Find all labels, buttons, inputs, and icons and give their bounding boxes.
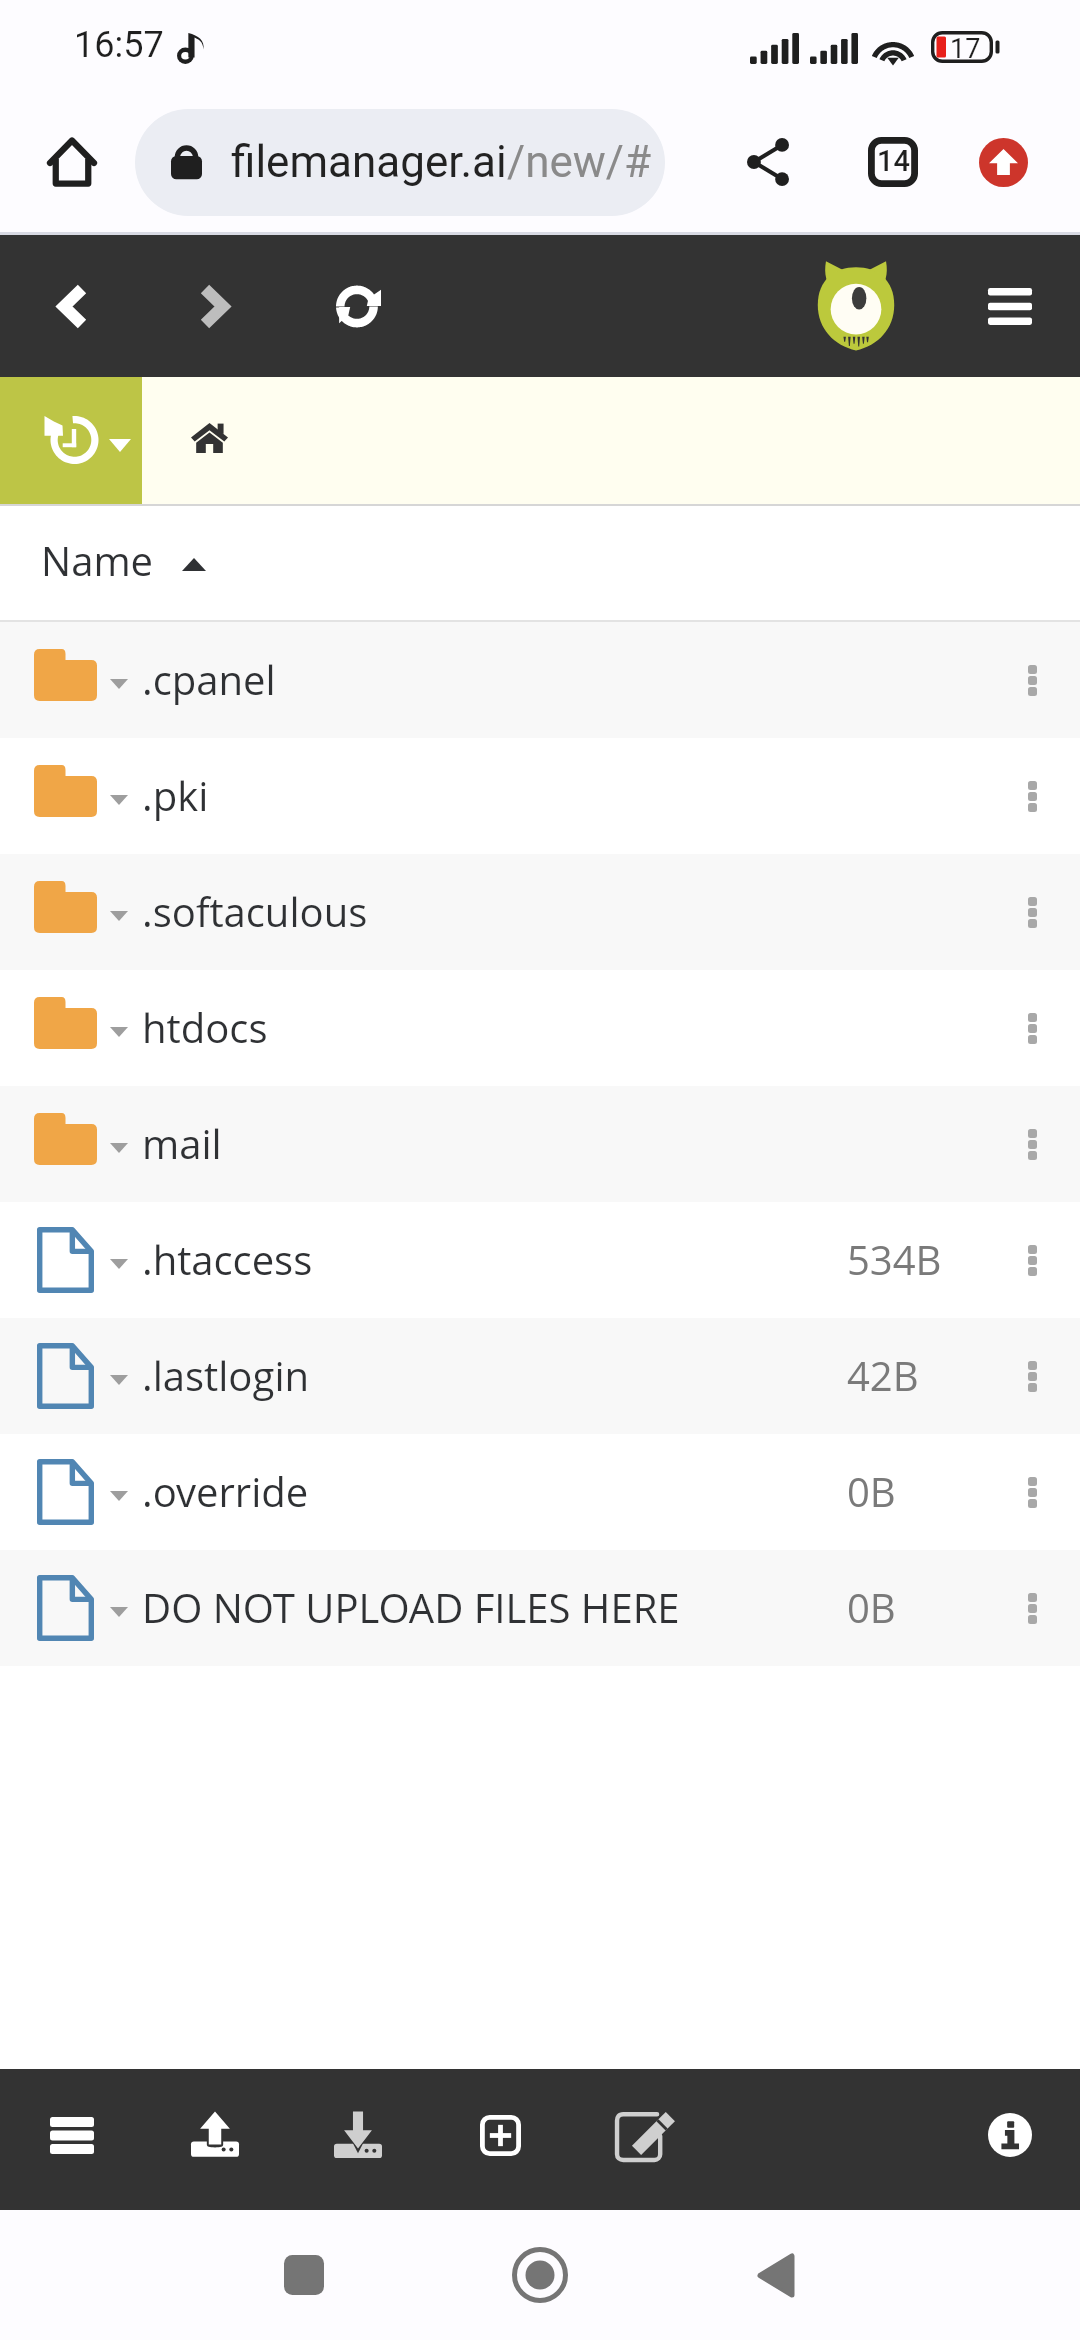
button[interactable]: More options <box>987 751 1077 841</box>
button[interactable]: Home <box>495 2230 585 2320</box>
staticText: 0B <box>847 1464 896 1518</box>
button[interactable]: Share <box>722 116 814 208</box>
button[interactable]: Upload <box>170 2090 260 2180</box>
button[interactable]: New <box>455 2090 545 2180</box>
staticText: htdocs <box>142 1000 268 1054</box>
button[interactable]: More options <box>987 1331 1077 1421</box>
button[interactable]: DO NOT UPLOAD FILES HERE <box>0 1550 1080 1666</box>
button[interactable]: Home <box>30 120 114 204</box>
button[interactable]: More options <box>987 983 1077 1073</box>
button[interactable]: Menu <box>962 258 1058 354</box>
staticText: /new/# <box>507 136 652 188</box>
button[interactable]: Back <box>24 257 122 355</box>
button[interactable]: Back <box>730 2230 820 2320</box>
button[interactable]: mail <box>0 1086 1080 1202</box>
button[interactable]: .pki <box>0 738 1080 854</box>
button[interactable]: Upload <box>955 114 1051 210</box>
button[interactable]: Reload <box>309 257 407 355</box>
button[interactable]: Home directory <box>179 408 239 468</box>
staticText: 17 <box>950 33 981 65</box>
staticText: 14 <box>877 144 910 178</box>
staticText: .htaccess <box>142 1232 313 1286</box>
staticText: Name <box>41 533 154 587</box>
button[interactable]: Forward <box>165 257 263 355</box>
button[interactable]: Name <box>0 506 1080 620</box>
button[interactable]: Tabs <box>845 114 941 210</box>
button[interactable]: .htaccess <box>0 1202 1080 1318</box>
button[interactable]: Download <box>313 2090 403 2180</box>
staticText: .lastlogin <box>142 1348 310 1402</box>
staticText: .override <box>142 1464 309 1518</box>
button[interactable]: filemanager.ai <box>135 109 665 216</box>
button[interactable]: Recents <box>259 2230 349 2320</box>
staticText: 0B <box>847 1580 896 1634</box>
staticText: DO NOT UPLOAD FILES HERE <box>142 1580 680 1634</box>
button[interactable]: Menu <box>27 2090 117 2180</box>
staticText: .softaculous <box>142 884 368 938</box>
staticText: 534B <box>847 1232 942 1286</box>
button[interactable]: .softaculous <box>0 854 1080 970</box>
staticText: 16:57 <box>74 24 164 66</box>
button[interactable]: Logo <box>817 259 895 351</box>
button[interactable]: Info <box>965 2090 1055 2180</box>
staticText: filemanager.ai <box>231 136 507 188</box>
staticText: mail <box>142 1116 222 1170</box>
button[interactable]: .cpanel <box>0 622 1080 738</box>
button[interactable]: Edit <box>597 2090 687 2180</box>
button[interactable]: .override <box>0 1434 1080 1550</box>
button[interactable]: .lastlogin <box>0 1318 1080 1434</box>
button[interactable]: htdocs <box>0 970 1080 1086</box>
staticText: 42B <box>847 1348 919 1402</box>
button[interactable]: More options <box>987 635 1077 725</box>
button[interactable]: More options <box>987 1447 1077 1537</box>
button[interactable]: More options <box>987 867 1077 957</box>
button[interactable]: More options <box>987 1099 1077 1189</box>
button[interactable]: History <box>0 377 142 504</box>
staticText: .pki <box>142 768 209 822</box>
button[interactable]: More options <box>987 1563 1077 1653</box>
staticText: .cpanel <box>142 652 276 706</box>
button[interactable]: More options <box>987 1215 1077 1305</box>
